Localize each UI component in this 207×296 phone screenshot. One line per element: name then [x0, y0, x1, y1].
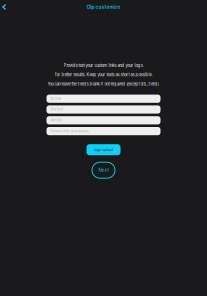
button[interactable]: Next	[92, 162, 115, 178]
button[interactable]: Back	[0, 1, 12, 13]
staticText: 1st link	[50, 97, 61, 100]
staticText: Provide text your custom links and your …	[63, 63, 143, 68]
staticText: Next	[98, 167, 108, 173]
button[interactable]: 3rd link	[46, 116, 160, 124]
staticText: logo upload	[94, 148, 113, 152]
staticText: 3rd link	[50, 118, 62, 122]
staticText: For better results. Keep your texts as s…	[54, 72, 152, 77]
button[interactable]: 1st link	[46, 95, 160, 103]
staticText: Clip customize	[86, 4, 120, 10]
staticText: Contact info (mandatory)	[50, 129, 89, 133]
staticText: You can leave the fields blank if not re…	[47, 82, 159, 87]
button[interactable]: logo upload	[86, 144, 120, 155]
button[interactable]: 2nd link	[46, 105, 160, 114]
staticText: 2nd link	[50, 108, 63, 111]
button[interactable]: Contact info (mandatory)	[46, 127, 160, 135]
